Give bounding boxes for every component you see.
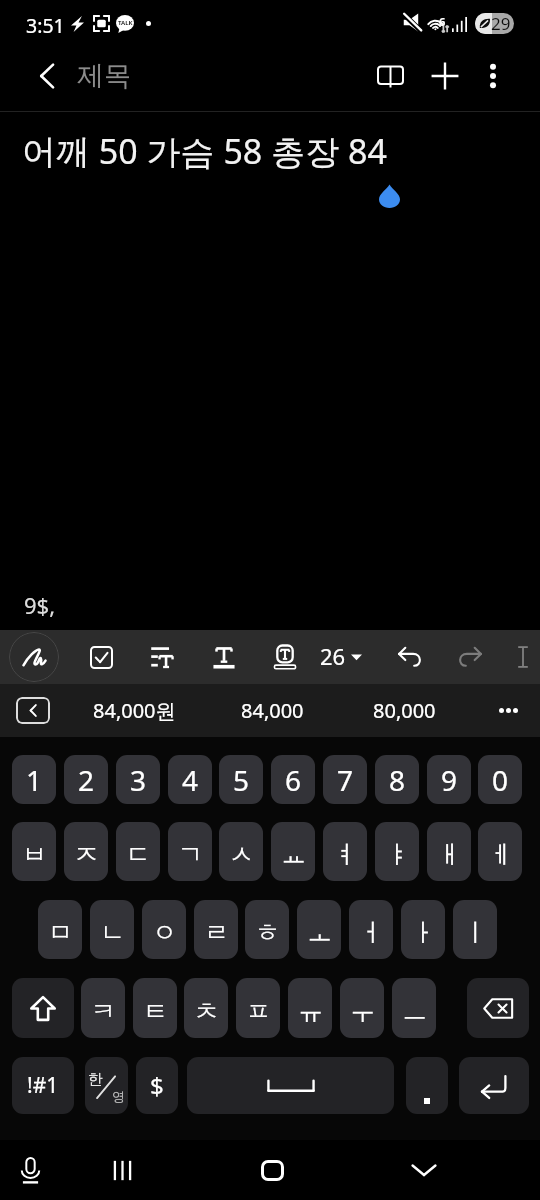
staticText: ㅡ [402,996,427,1027]
button[interactable]: !#1 [12,1057,74,1114]
staticText: 4 [182,761,199,799]
button[interactable]: Period [406,1057,448,1114]
button[interactable]: ㅡ [392,978,436,1038]
button[interactable]: Home [242,1140,302,1200]
staticText: ㅓ [359,917,384,948]
button[interactable]: ㅔ [478,822,522,881]
staticText: ㅌ [143,996,168,1027]
staticText: TALK [118,19,133,27]
staticText: ㄴ [100,917,125,948]
staticText: ㅜ [350,996,375,1027]
staticText: !#1 [27,1071,59,1100]
button[interactable]: Add [419,50,471,102]
staticText: ㅑ [385,839,410,870]
button[interactable]: ㄷ [116,822,160,881]
staticText: 26 [320,641,346,671]
button[interactable]: ㅎ [245,900,289,959]
button[interactable]: More suggestions [478,684,538,737]
staticText: 영 [112,1088,125,1104]
button[interactable]: ㅠ [288,978,332,1038]
button[interactable]: Expand suggestions [16,697,50,724]
button[interactable]: 80,000 [336,684,472,737]
button[interactable]: ㅁ [38,900,82,959]
staticText: 29 [491,13,511,33]
staticText: ㅗ [307,917,332,948]
staticText: 80,000 [373,697,436,724]
staticText: ㄱ [178,839,203,870]
staticText: ㅇ [152,917,177,948]
button[interactable]: 1 [12,755,56,804]
button[interactable]: 0 [478,755,522,804]
button[interactable]: 7 [323,755,367,804]
button[interactable]: 6 [271,755,315,804]
button[interactable]: $ [136,1057,178,1114]
button[interactable]: ㅇ [142,900,186,959]
staticText: ㅈ [74,839,99,870]
button[interactable]: Voice input [0,1140,60,1200]
button[interactable]: ㄴ [90,900,134,959]
staticText: $ [150,1069,164,1102]
button[interactable]: Reading view [364,50,416,102]
button[interactable]: ㅗ [297,900,341,959]
staticText: ㄹ [204,917,229,948]
button[interactable]: Shift [12,978,74,1038]
button[interactable]: 84,000 [208,684,336,737]
button[interactable]: Handwriting [9,632,59,682]
button[interactable]: Text colour [197,630,251,684]
button[interactable]: Switch language [85,1057,128,1114]
button[interactable]: ㅏ [401,900,445,959]
button[interactable]: ㅋ [81,978,125,1038]
button[interactable]: Enter [459,1057,529,1114]
button[interactable]: Undo [383,630,437,684]
staticText: 7 [337,761,354,799]
button[interactable]: ㅍ [236,978,280,1038]
button[interactable]: ㅐ [427,822,471,881]
button[interactable]: ㅊ [184,978,228,1038]
button[interactable]: ㅜ [340,978,384,1038]
button[interactable]: 26 [320,630,376,684]
staticText: ㅅ [229,839,254,870]
button[interactable]: 2 [64,755,108,804]
button[interactable]: More options [467,50,519,102]
staticText: ㅛ [281,839,306,870]
staticText: ㅍ [246,996,271,1027]
button[interactable]: 3 [116,755,160,804]
staticText: ㅠ [298,996,323,1027]
button[interactable]: ㅌ [133,978,177,1038]
button[interactable]: Text highlight [258,630,312,684]
button[interactable]: Redo [443,630,497,684]
button[interactable]: Checklist [74,630,128,684]
button[interactable]: 8 [375,755,419,804]
button[interactable]: ㅕ [323,822,367,881]
button[interactable]: Space [187,1057,394,1114]
button[interactable]: ㄱ [168,822,212,881]
staticText: 84,000원 [93,697,176,724]
staticText: 9 [441,761,458,799]
button[interactable]: Text cursor [496,630,540,684]
staticText: 2 [78,761,95,799]
button[interactable]: ㄹ [194,900,238,959]
staticText: 6 [439,14,446,29]
button[interactable]: ㅂ [12,822,56,881]
button[interactable]: Back [21,50,73,102]
button[interactable]: 9 [427,755,471,804]
button[interactable]: ㅅ [219,822,263,881]
button[interactable]: Backspace [467,978,529,1038]
button[interactable]: Paragraph style [135,630,189,684]
button[interactable]: 4 [168,755,212,804]
button[interactable]: ㅣ [453,900,497,959]
staticText: 어깨 50 가슴 58 총장 84 [22,128,387,174]
staticText: 3 [130,761,147,799]
button[interactable]: 5 [219,755,263,804]
button[interactable]: 84,000원 [60,684,208,737]
button[interactable]: ㅓ [349,900,393,959]
staticText: ㅁ [48,917,73,948]
staticText: 3:51 [26,12,65,39]
button[interactable]: Recents [92,1140,152,1200]
staticText: ㄷ [126,839,151,870]
staticText: 0 [492,761,509,799]
button[interactable]: Hide keyboard [394,1140,454,1200]
button[interactable]: ㅛ [271,822,315,881]
button[interactable]: ㅈ [64,822,108,881]
button[interactable]: ㅑ [375,822,419,881]
